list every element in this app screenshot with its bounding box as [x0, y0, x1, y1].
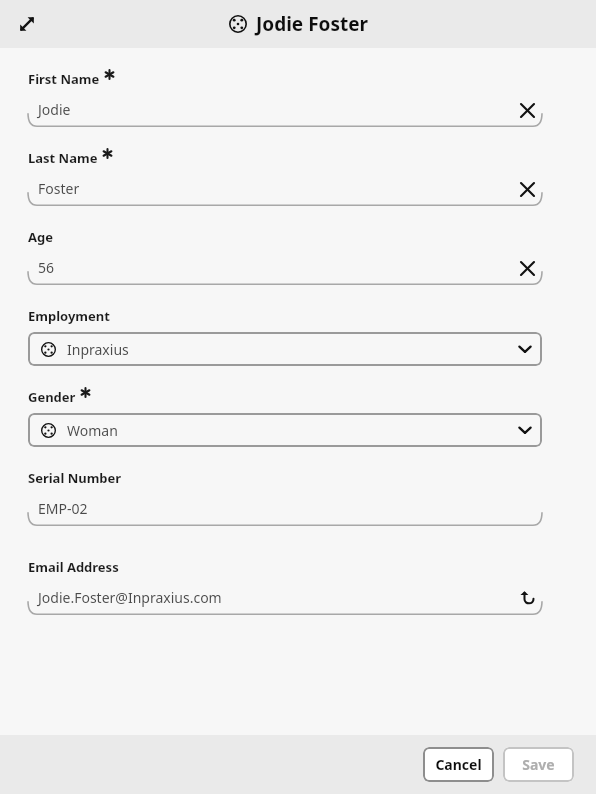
staticText: Employment — [28, 307, 110, 325]
button[interactable]: Inpraxius — [28, 332, 542, 366]
button[interactable]: Foster — [28, 174, 542, 206]
staticText: First Name — [28, 70, 100, 88]
staticText: Jodie — [38, 100, 71, 119]
staticText: Foster — [38, 179, 80, 198]
button[interactable]: Jodie.Foster@Inpraxius.com — [28, 583, 542, 615]
button[interactable]: Expand — [10, 7, 44, 41]
staticText: 56 — [38, 258, 55, 277]
staticText: Age — [28, 228, 53, 246]
staticText: Email Address — [28, 558, 119, 576]
staticText: Last Name — [28, 149, 98, 167]
button[interactable]: Save — [503, 747, 574, 782]
button[interactable]: Jodie — [28, 95, 542, 127]
button[interactable]: Cancel — [423, 747, 494, 782]
button[interactable]: Woman — [28, 413, 542, 447]
button[interactable]: Clear — [516, 257, 538, 279]
staticText: Serial Number — [28, 469, 122, 487]
button[interactable]: Clear — [516, 99, 538, 121]
staticText: Jodie Foster — [256, 11, 369, 37]
staticText: Inpraxius — [67, 340, 518, 359]
staticText: EMP-02 — [38, 499, 88, 518]
staticText: Gender — [28, 388, 76, 406]
button[interactable]: EMP-02 — [28, 494, 542, 526]
staticText: Save — [522, 755, 555, 774]
staticText: Jodie.Foster@Inpraxius.com — [38, 588, 222, 607]
button[interactable]: Clear — [516, 178, 538, 200]
button[interactable]: 56 — [28, 253, 542, 285]
staticText: Woman — [67, 421, 518, 440]
staticText: Cancel — [435, 755, 482, 774]
button[interactable]: Undo — [516, 587, 538, 609]
